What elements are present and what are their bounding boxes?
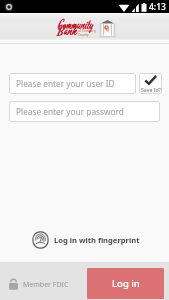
staticText: Log in — [112, 277, 140, 290]
button[interactable]: Member FDIC — [0, 275, 75, 294]
staticText: Log in with fingerprint — [54, 235, 140, 245]
button[interactable]: Log in — [87, 268, 164, 299]
other: Log in with fingerprint — [32, 231, 49, 249]
button[interactable]: Please enter your password — [9, 101, 160, 122]
staticText: Please enter your user ID — [16, 78, 115, 89]
button[interactable]: Save Id — [139, 73, 162, 94]
staticText: Bank — [57, 23, 77, 40]
staticText: Please enter your password — [16, 106, 124, 117]
staticText: 4:13 — [149, 1, 166, 13]
button[interactable]: Please enter your user ID — [9, 73, 136, 94]
staticText: Save Id? — [141, 86, 161, 93]
staticText: Community — [58, 18, 94, 33]
staticText: of Pittsburg — [78, 29, 96, 33]
button[interactable]: Log in with fingerprint — [30, 229, 142, 251]
staticText: Member FDIC — [23, 280, 69, 290]
staticText: County — [78, 33, 89, 37]
